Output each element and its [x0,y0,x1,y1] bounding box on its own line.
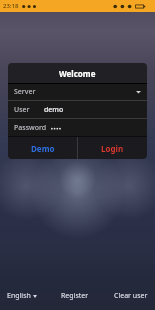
staticText: English [7,291,31,301]
button[interactable]: Clear user [112,287,150,305]
button[interactable]: Login [78,137,147,159]
button[interactable]: Register [59,287,91,305]
staticText: Welcome [59,68,96,79]
staticText: Demo [31,143,55,154]
button[interactable]: User [8,101,147,118]
button[interactable]: Demo [8,137,77,159]
staticText: Login [101,143,124,154]
staticText: demo [44,105,64,115]
staticText: Clear user [114,291,148,301]
button[interactable]: Password [8,119,147,136]
other: Choose server [136,90,141,94]
staticText: Password [14,123,47,133]
button[interactable]: Server [8,84,147,100]
staticText: Register [61,291,89,301]
staticText: Server [14,87,36,97]
staticText: 23:18 [3,2,19,10]
button[interactable]: English [5,287,39,305]
staticText: User [14,105,30,115]
